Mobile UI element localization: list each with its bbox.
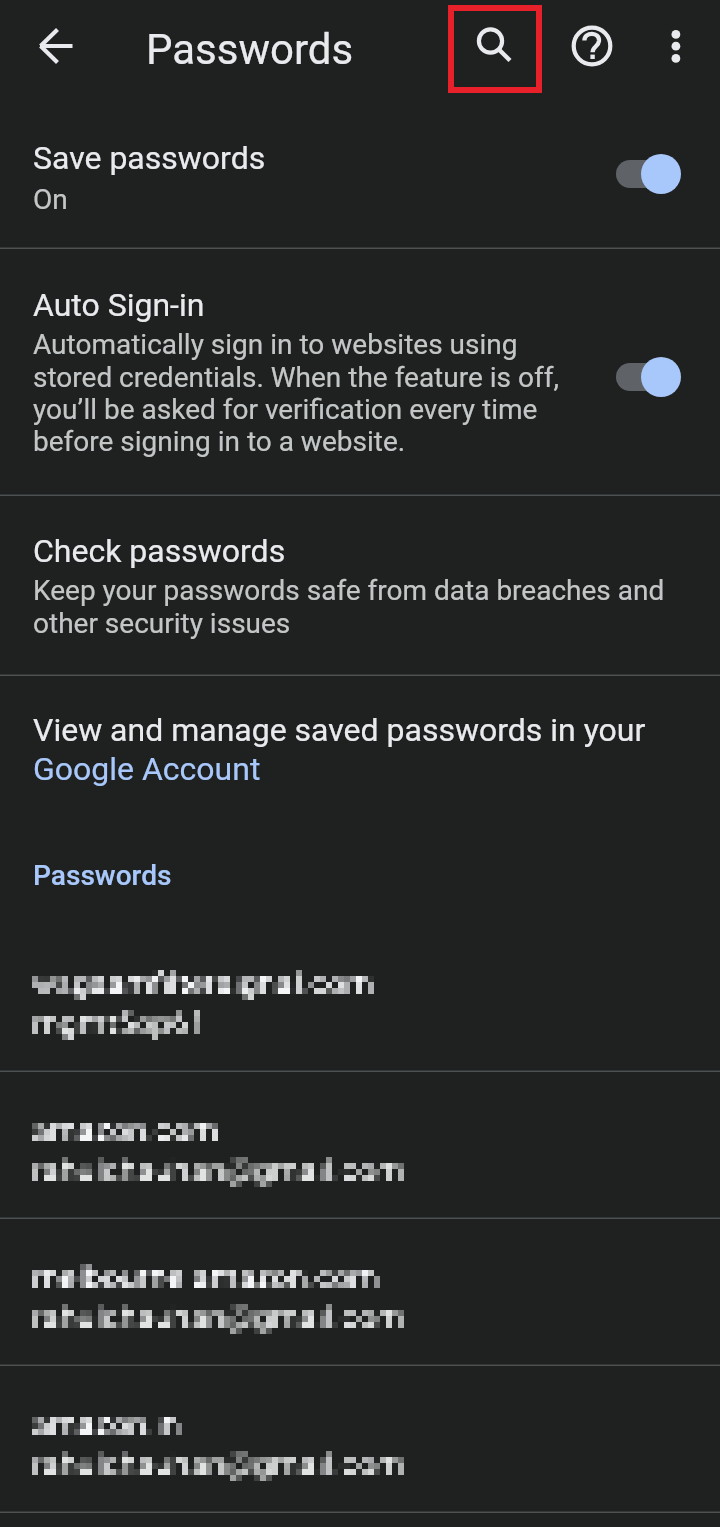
button[interactable] xyxy=(0,1219,720,1365)
button[interactable]: Help xyxy=(548,2,636,90)
staticText: Auto Sign-in xyxy=(33,286,205,324)
staticText: View and manage saved passwords in your xyxy=(33,711,693,749)
staticText: Passwords xyxy=(33,859,172,892)
button[interactable]: Check passwords xyxy=(0,496,720,675)
button[interactable] xyxy=(0,923,720,1071)
button[interactable]: Save passwords xyxy=(0,96,720,248)
button[interactable]: More options xyxy=(632,2,720,90)
button[interactable]: Toggle, on xyxy=(616,355,720,399)
button[interactable]: Search xyxy=(448,5,542,93)
button[interactable]: Back xyxy=(12,2,100,90)
staticText: Automatically sign in to websites using … xyxy=(33,328,575,458)
button[interactable]: Google Account xyxy=(33,750,261,788)
staticText: Keep your passwords safe from data breac… xyxy=(33,574,695,640)
staticText: Save passwords xyxy=(33,139,266,177)
button[interactable] xyxy=(0,1072,720,1218)
staticText: Passwords xyxy=(146,25,354,74)
button[interactable]: Auto Sign-in xyxy=(0,249,720,495)
button[interactable]: Toggle, on xyxy=(616,152,720,196)
staticText: On xyxy=(33,183,68,216)
staticText: Check passwords xyxy=(33,532,286,570)
button[interactable] xyxy=(0,1366,720,1512)
